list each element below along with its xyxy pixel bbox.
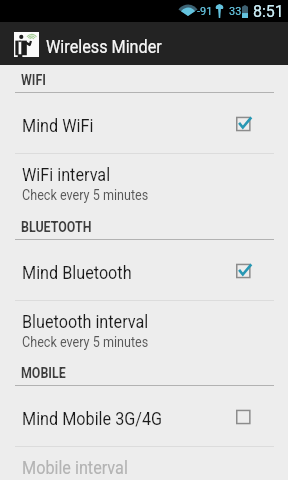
staticText: Bluetooth interval [22,311,149,332]
button[interactable]: Mind WiFi [0,93,288,153]
staticText: 8:51 [253,2,284,21]
staticText: 33 [229,5,242,18]
staticText: MOBILE [21,365,66,381]
staticText: Mind WiFi [22,115,94,136]
staticText: WiFi interval [22,164,110,185]
button[interactable]: Mind Mobile 3G/4G [0,386,288,446]
button[interactable]: Bluetooth interval [0,301,288,355]
staticText: Mind Mobile 3G/4G [22,408,162,429]
staticText: Check every 5 minutes [22,187,149,203]
button[interactable]: Mobile interval [0,447,288,480]
staticText: Wireless Minder [46,36,162,57]
staticText: Check every 5 minutes [22,334,149,350]
staticText: -91 [197,5,213,18]
button[interactable]: Mind Bluetooth [0,240,288,300]
staticText: Mind Bluetooth [22,262,132,283]
button[interactable]: WiFi interval [0,154,288,208]
staticText: BLUETOOTH [21,219,92,235]
staticText: WIFI [21,72,46,88]
staticText: Mobile interval [22,457,128,478]
